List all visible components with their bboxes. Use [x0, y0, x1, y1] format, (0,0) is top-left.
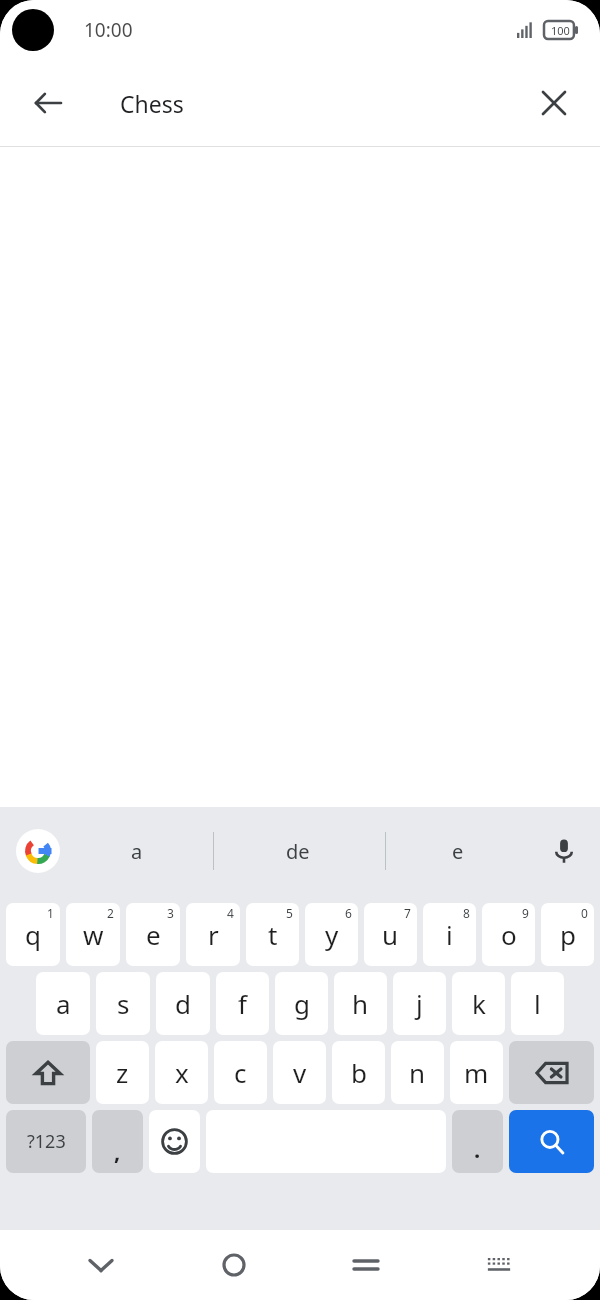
- button[interactable]: g: [275, 972, 328, 1035]
- button[interactable]: ,: [92, 1110, 143, 1173]
- button[interactable]: l: [511, 972, 564, 1035]
- button[interactable]: Voice input: [542, 829, 586, 873]
- staticText: e: [146, 917, 161, 952]
- staticText: ?123: [27, 1129, 66, 1154]
- button[interactable]: k: [452, 972, 505, 1035]
- staticText: 2: [107, 905, 114, 921]
- button[interactable]: t: [246, 903, 299, 966]
- staticText: z: [116, 1055, 129, 1090]
- button[interactable]: x: [155, 1041, 208, 1104]
- staticText: a: [56, 986, 71, 1021]
- button[interactable]: y: [305, 903, 358, 966]
- button[interactable]: b: [332, 1041, 385, 1104]
- staticText: .: [474, 1134, 481, 1164]
- button[interactable]: Backspace: [509, 1041, 594, 1104]
- button[interactable]: c: [214, 1041, 267, 1104]
- staticText: o: [501, 917, 517, 952]
- button[interactable]: Shift: [6, 1041, 90, 1104]
- staticText: n: [409, 1055, 426, 1090]
- button[interactable]: a: [36, 972, 90, 1035]
- button[interactable]: i: [423, 903, 476, 966]
- button[interactable]: m: [450, 1041, 503, 1104]
- button[interactable]: Hide keyboard: [69, 1233, 133, 1297]
- staticText: q: [25, 917, 41, 952]
- staticText: k: [472, 986, 486, 1021]
- button[interactable]: n: [391, 1041, 444, 1104]
- button[interactable]: v: [273, 1041, 326, 1104]
- staticText: 0: [581, 905, 588, 921]
- button[interactable]: r: [186, 903, 240, 966]
- button[interactable]: u: [364, 903, 417, 966]
- staticText: de: [286, 838, 310, 865]
- staticText: e: [452, 838, 464, 865]
- button[interactable]: Back: [20, 75, 76, 131]
- staticText: f: [238, 986, 247, 1021]
- button[interactable]: z: [96, 1041, 149, 1104]
- button[interactable]: Search: [509, 1110, 594, 1173]
- staticText: p: [560, 917, 576, 952]
- staticText: i: [446, 917, 453, 952]
- staticText: y: [325, 917, 339, 952]
- button[interactable]: Google: [16, 829, 60, 873]
- staticText: 10:00: [84, 17, 133, 43]
- button[interactable]: w: [66, 903, 120, 966]
- button[interactable]: h: [334, 972, 387, 1035]
- staticText: r: [208, 917, 219, 952]
- staticText: t: [268, 917, 278, 952]
- staticText: 7: [404, 905, 411, 921]
- staticText: w: [83, 917, 104, 952]
- staticText: m: [464, 1055, 489, 1090]
- staticText: a: [131, 838, 143, 865]
- staticText: c: [234, 1055, 247, 1090]
- button[interactable]: s: [96, 972, 150, 1035]
- button[interactable]: d: [156, 972, 210, 1035]
- staticText: s: [117, 986, 130, 1021]
- staticText: l: [534, 986, 541, 1021]
- button[interactable]: f: [216, 972, 269, 1035]
- button[interactable]: Home: [202, 1233, 266, 1297]
- button[interactable]: q: [6, 903, 60, 966]
- button[interactable]: e: [126, 903, 180, 966]
- staticText: 1: [47, 905, 54, 921]
- button[interactable]: o: [482, 903, 535, 966]
- staticText: ,: [114, 1136, 121, 1166]
- button[interactable]: ?123: [6, 1110, 86, 1173]
- staticText: j: [416, 986, 423, 1021]
- staticText: 3: [167, 905, 174, 921]
- staticText: 9: [522, 905, 529, 921]
- button[interactable]: j: [393, 972, 446, 1035]
- staticText: h: [352, 986, 369, 1021]
- staticText: 6: [345, 905, 352, 921]
- staticText: b: [351, 1055, 367, 1090]
- button[interactable]: p: [541, 903, 594, 966]
- button[interactable]: .: [452, 1110, 503, 1173]
- button[interactable]: Switch keyboard: [467, 1233, 531, 1297]
- staticText: u: [382, 917, 399, 952]
- staticText: d: [175, 986, 191, 1021]
- button[interactable]: Clear: [526, 75, 582, 131]
- staticText: 4: [227, 905, 234, 921]
- staticText: v: [293, 1055, 307, 1090]
- staticText: x: [175, 1055, 189, 1090]
- staticText: 8: [463, 905, 470, 921]
- staticText: Chess: [120, 88, 184, 119]
- staticText: 5: [286, 905, 293, 921]
- staticText: g: [294, 986, 310, 1021]
- button[interactable]: Emoji: [149, 1110, 200, 1173]
- staticText: 100: [551, 23, 570, 38]
- button[interactable]: Recents: [334, 1233, 398, 1297]
